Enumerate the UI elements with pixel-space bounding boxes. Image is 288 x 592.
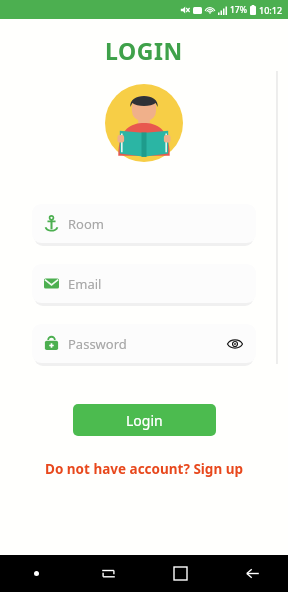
staticText: 17% — [230, 4, 247, 16]
button[interactable]: Password — [32, 324, 256, 363]
button[interactable]: Do not have account? Sign up — [0, 460, 288, 478]
staticText: Room — [68, 215, 244, 233]
button[interactable]: Email — [32, 264, 256, 303]
staticText: LOGIN — [105, 35, 183, 66]
button[interactable]: Back — [216, 555, 288, 592]
button[interactable]: Keyboard indicator — [0, 555, 72, 592]
button[interactable]: Switch input method — [72, 555, 144, 592]
staticText: Password — [68, 335, 226, 353]
staticText: Email — [68, 275, 244, 293]
staticText: 10:12 — [259, 4, 283, 16]
button[interactable]: Login — [73, 404, 216, 436]
staticText: Login — [126, 411, 163, 430]
button[interactable]: Recent apps — [144, 555, 216, 592]
staticText: Do not have account? Sign up — [45, 460, 243, 478]
button[interactable]: Show password — [226, 335, 244, 353]
button[interactable]: Room — [32, 204, 256, 243]
